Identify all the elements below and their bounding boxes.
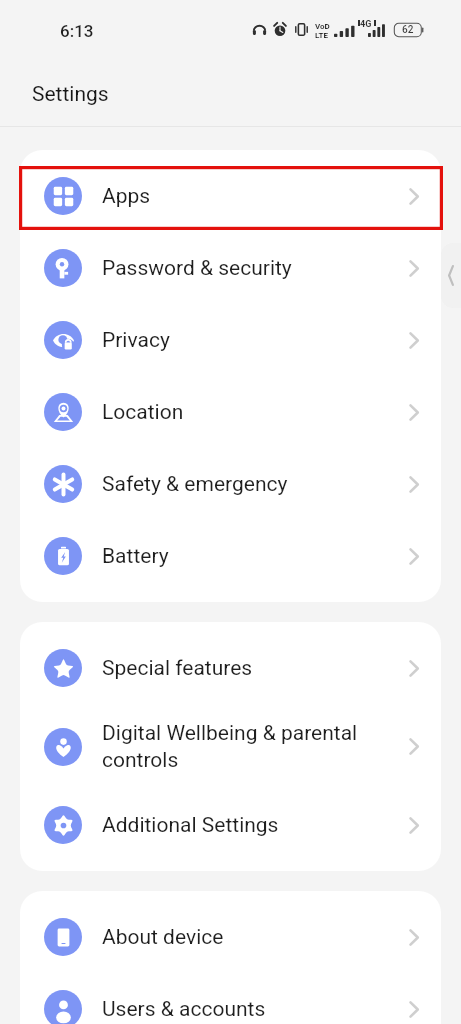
button[interactable]: Battery <box>20 520 441 592</box>
button[interactable]: Password & security <box>20 232 441 304</box>
staticText: Settings <box>32 82 109 107</box>
button[interactable]: Apps <box>20 160 441 232</box>
button[interactable]: Users & accounts <box>20 973 441 1024</box>
staticText: 6:13 <box>60 21 94 41</box>
button[interactable]: Location <box>20 376 441 448</box>
staticText: Safety & emergency <box>102 472 409 497</box>
staticText: VoD <box>315 22 330 31</box>
staticText: Additional Settings <box>102 813 409 838</box>
staticText: About device <box>102 925 409 950</box>
staticText: Location <box>102 400 409 425</box>
staticText: Users & accounts <box>102 997 409 1022</box>
button[interactable]: Open side panel <box>441 243 461 308</box>
button[interactable]: Privacy <box>20 304 441 376</box>
button[interactable]: Safety & emergency <box>20 448 441 520</box>
staticText: Battery <box>102 544 409 569</box>
button[interactable]: Additional Settings <box>20 789 441 861</box>
staticText: 4G <box>360 19 372 30</box>
staticText: 62 <box>402 24 414 36</box>
button[interactable]: Digital Wellbeing & parental controls <box>20 704 441 789</box>
staticText: Special features <box>102 656 409 681</box>
button[interactable]: Special features <box>20 632 441 704</box>
staticText: LTE <box>315 31 328 40</box>
staticText: Password & security <box>102 256 409 281</box>
button[interactable]: About device <box>20 901 441 973</box>
staticText: Privacy <box>102 328 409 353</box>
staticText: Digital Wellbeing & parental controls <box>102 721 409 773</box>
staticText: Apps <box>102 184 409 209</box>
